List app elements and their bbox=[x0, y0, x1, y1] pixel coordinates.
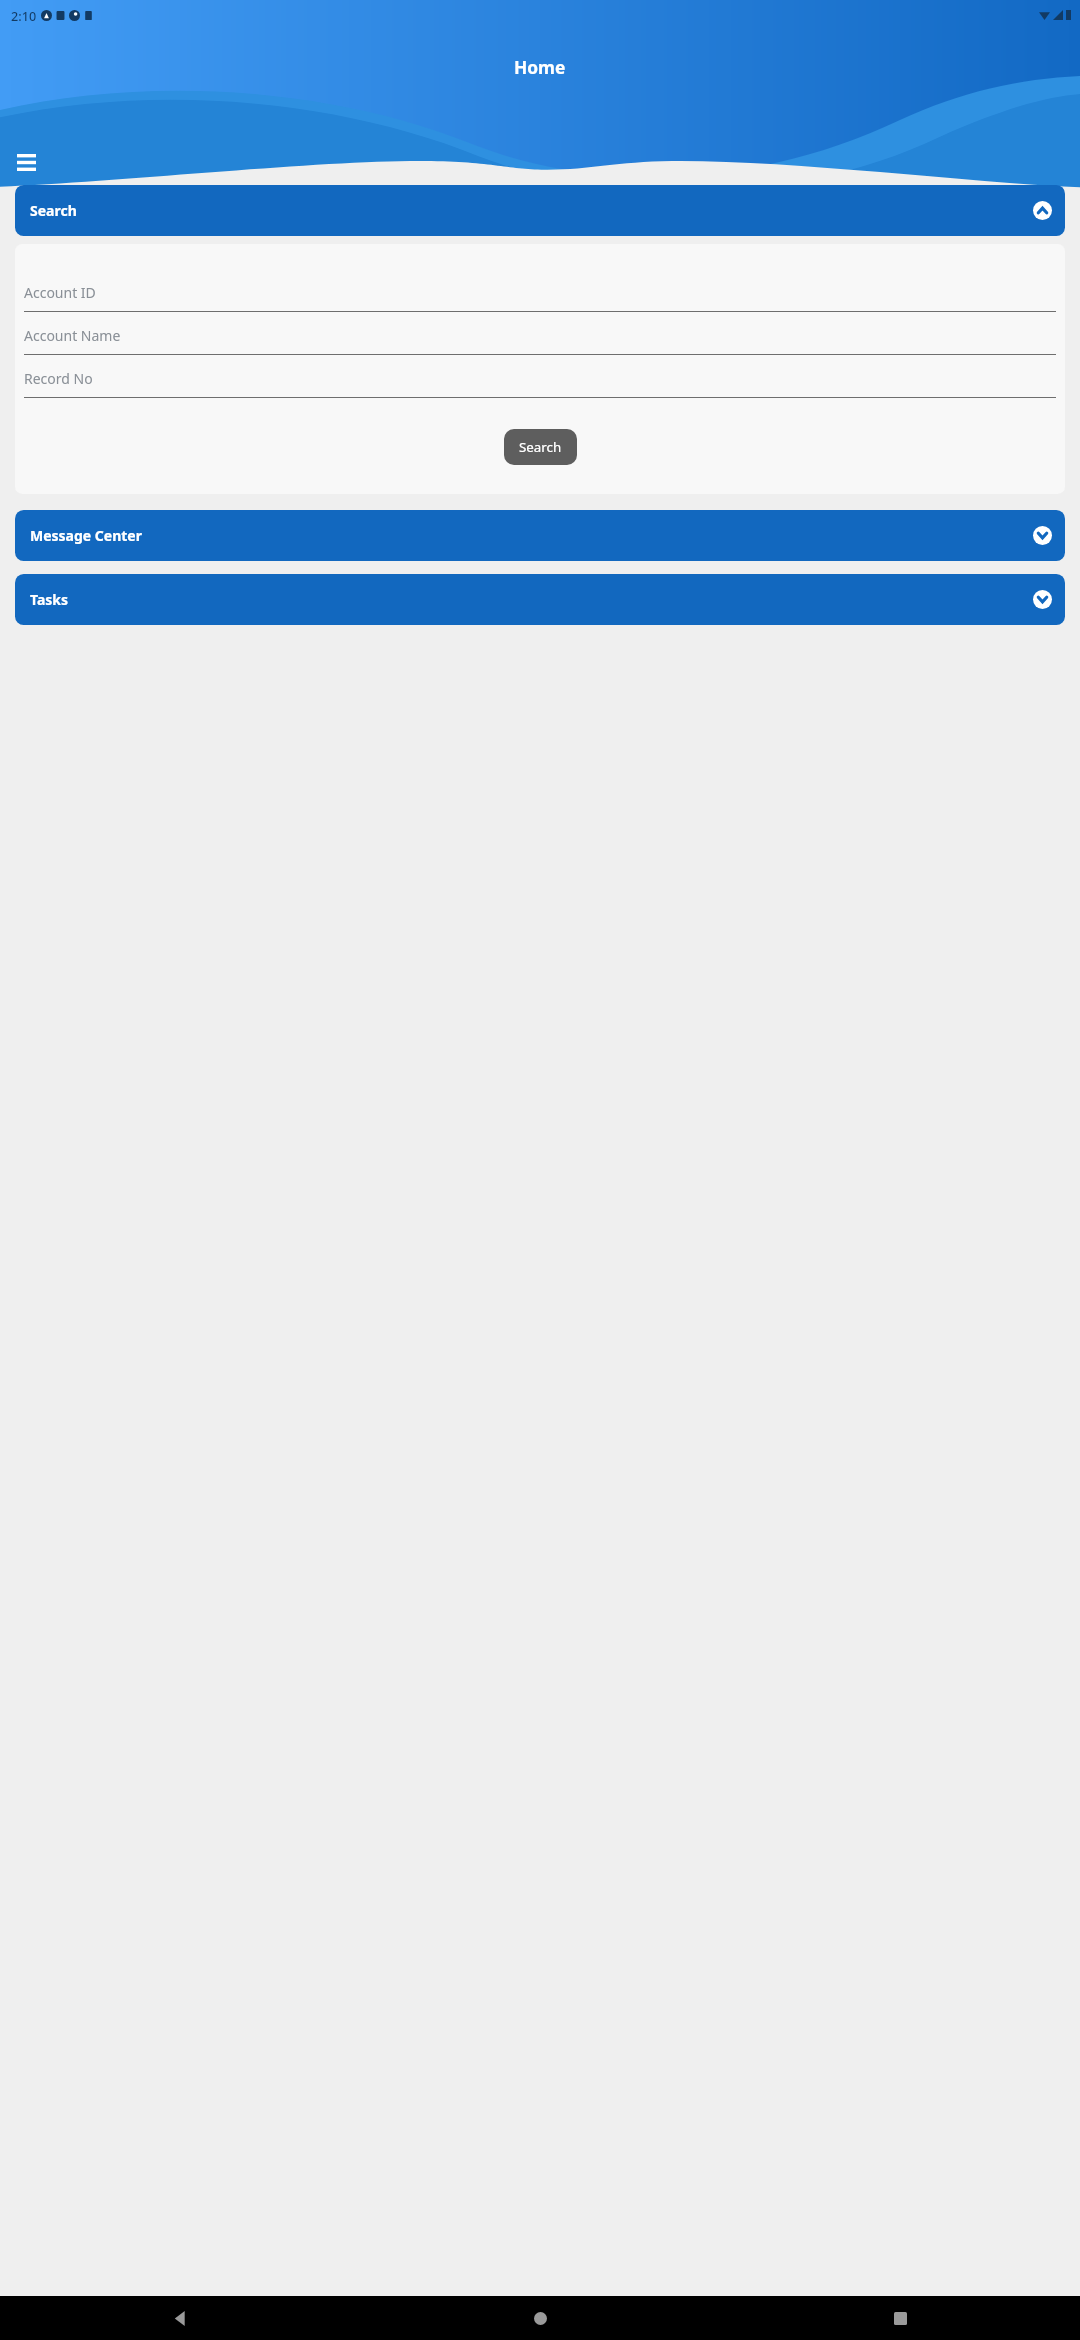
button[interactable]: Search bbox=[15, 185, 1065, 236]
button[interactable]: Tasks bbox=[15, 574, 1065, 625]
staticText: Account ID bbox=[24, 283, 96, 302]
button[interactable]: Record No bbox=[24, 369, 1056, 398]
button[interactable]: Home bbox=[360, 2296, 720, 2340]
button[interactable]: Recents bbox=[720, 2296, 1080, 2340]
button[interactable]: Account Name bbox=[24, 326, 1056, 355]
staticText: 2:10 bbox=[11, 7, 37, 24]
staticText: Home bbox=[514, 55, 566, 79]
button[interactable]: Search bbox=[504, 429, 577, 465]
button[interactable]: Account ID bbox=[24, 283, 1056, 312]
button[interactable]: Message Center bbox=[15, 510, 1065, 561]
staticText: Tasks bbox=[30, 590, 69, 609]
staticText: Search bbox=[30, 201, 77, 220]
button[interactable]: Back bbox=[0, 2296, 360, 2340]
staticText: Search bbox=[519, 438, 562, 456]
staticText: Message Center bbox=[30, 526, 142, 545]
button[interactable]: Menu bbox=[12, 149, 41, 176]
staticText: Account Name bbox=[24, 326, 121, 345]
staticText: Record No bbox=[24, 369, 93, 388]
